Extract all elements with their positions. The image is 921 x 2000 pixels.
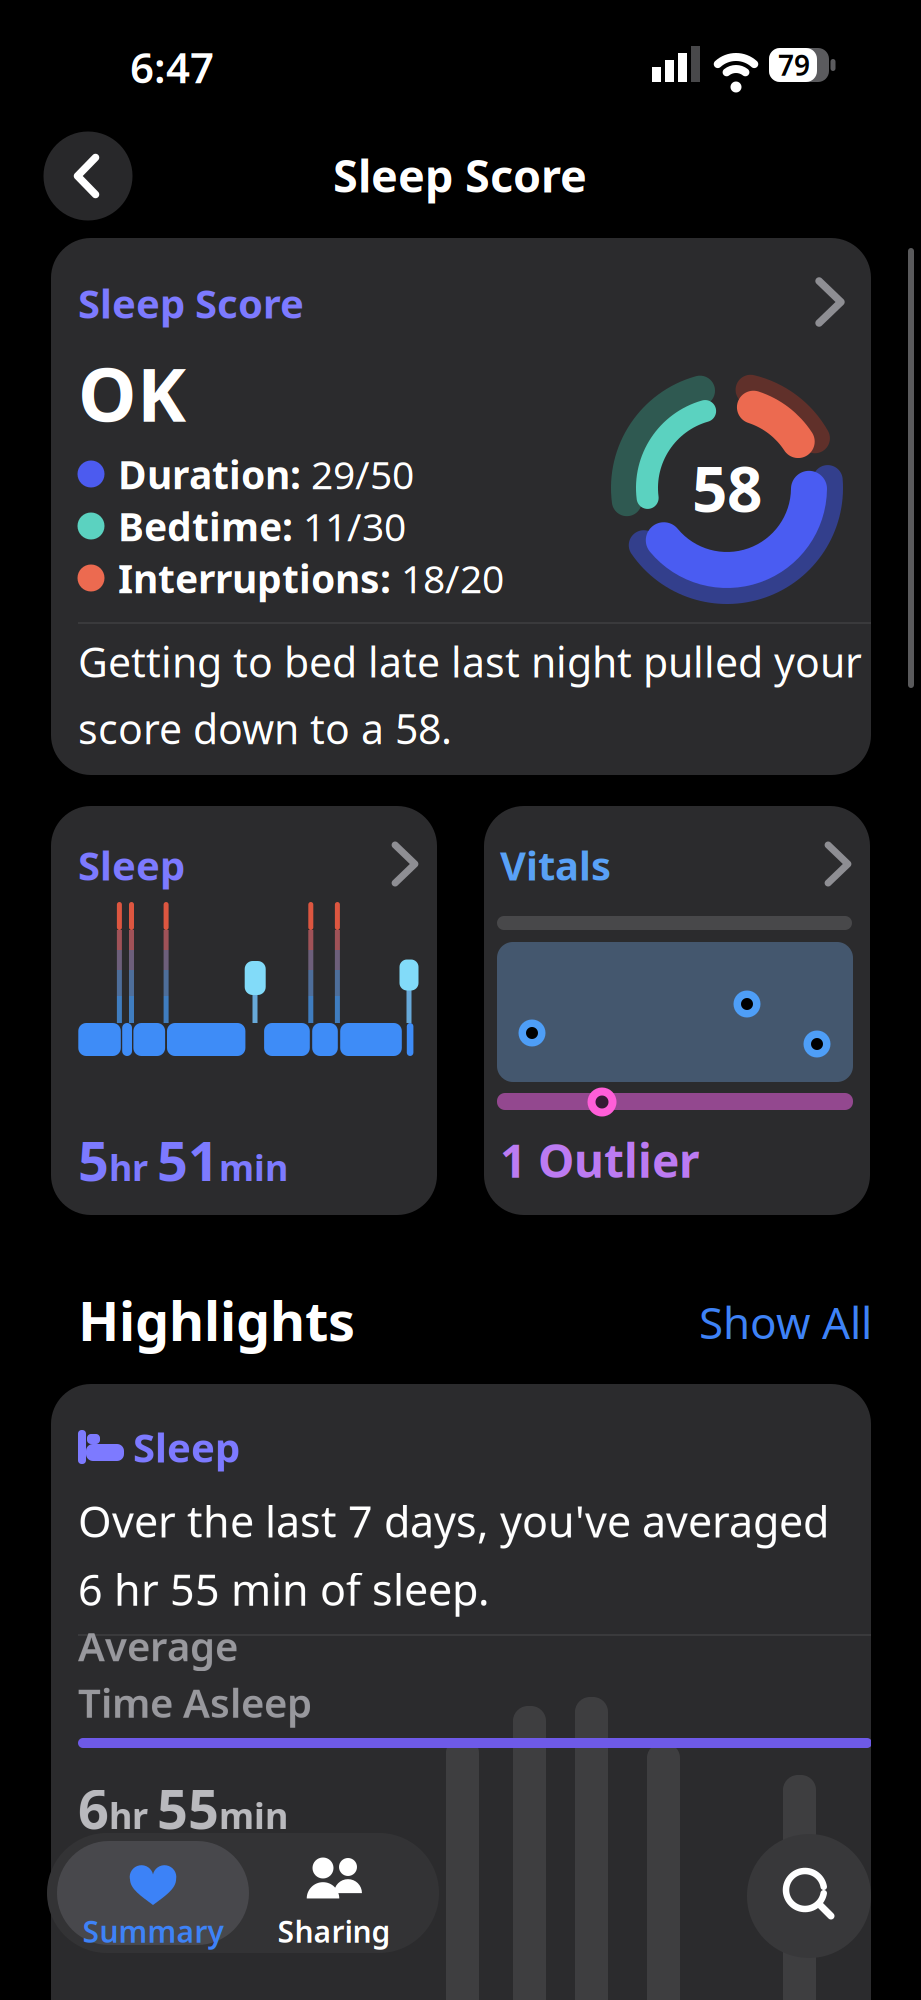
button[interactable]: Sleep Score — [51, 238, 871, 775]
staticText: Bedtime: 11/30 — [118, 500, 406, 552]
staticText: Sleep — [133, 1421, 240, 1473]
button[interactable]: Sharing — [238, 1841, 430, 1945]
button[interactable]: Vitals — [484, 806, 870, 1215]
staticText: Sleep — [78, 839, 185, 891]
button[interactable]: Summary — [57, 1841, 249, 1945]
staticText: 1 Outlier — [500, 1130, 700, 1190]
staticText: Duration: 29/50 — [118, 448, 414, 500]
button[interactable]: Sleep — [51, 1384, 871, 2000]
button[interactable]: Back — [43, 131, 132, 220]
staticText: Sharing — [277, 1911, 390, 1951]
staticText: Average Time Asleep — [78, 1620, 312, 1728]
staticText: Vitals — [500, 839, 611, 891]
button[interactable]: Sleep — [51, 806, 437, 1215]
staticText: 79 — [778, 47, 810, 83]
staticText: Highlights — [78, 1285, 355, 1355]
staticText: Getting to bed late last night pulled yo… — [78, 635, 862, 755]
staticText: 5hr 51min — [78, 1124, 288, 1196]
staticText: Interruptions: 18/20 — [118, 552, 504, 604]
staticText: OK — [78, 345, 186, 441]
staticText: 6hr 55min — [78, 1772, 288, 1844]
staticText: Summary — [82, 1911, 223, 1951]
button[interactable]: Show All — [572, 1293, 872, 1351]
staticText: Show All — [699, 1293, 872, 1351]
staticText: Over the last 7 days, you've averaged 6 … — [78, 1493, 829, 1617]
staticText: 6:47 — [130, 39, 214, 94]
staticText: 58 — [692, 447, 762, 529]
button[interactable]: Search — [747, 1834, 871, 1958]
staticText: Sleep Score — [78, 277, 304, 329]
staticText: Sleep Score — [333, 146, 587, 204]
